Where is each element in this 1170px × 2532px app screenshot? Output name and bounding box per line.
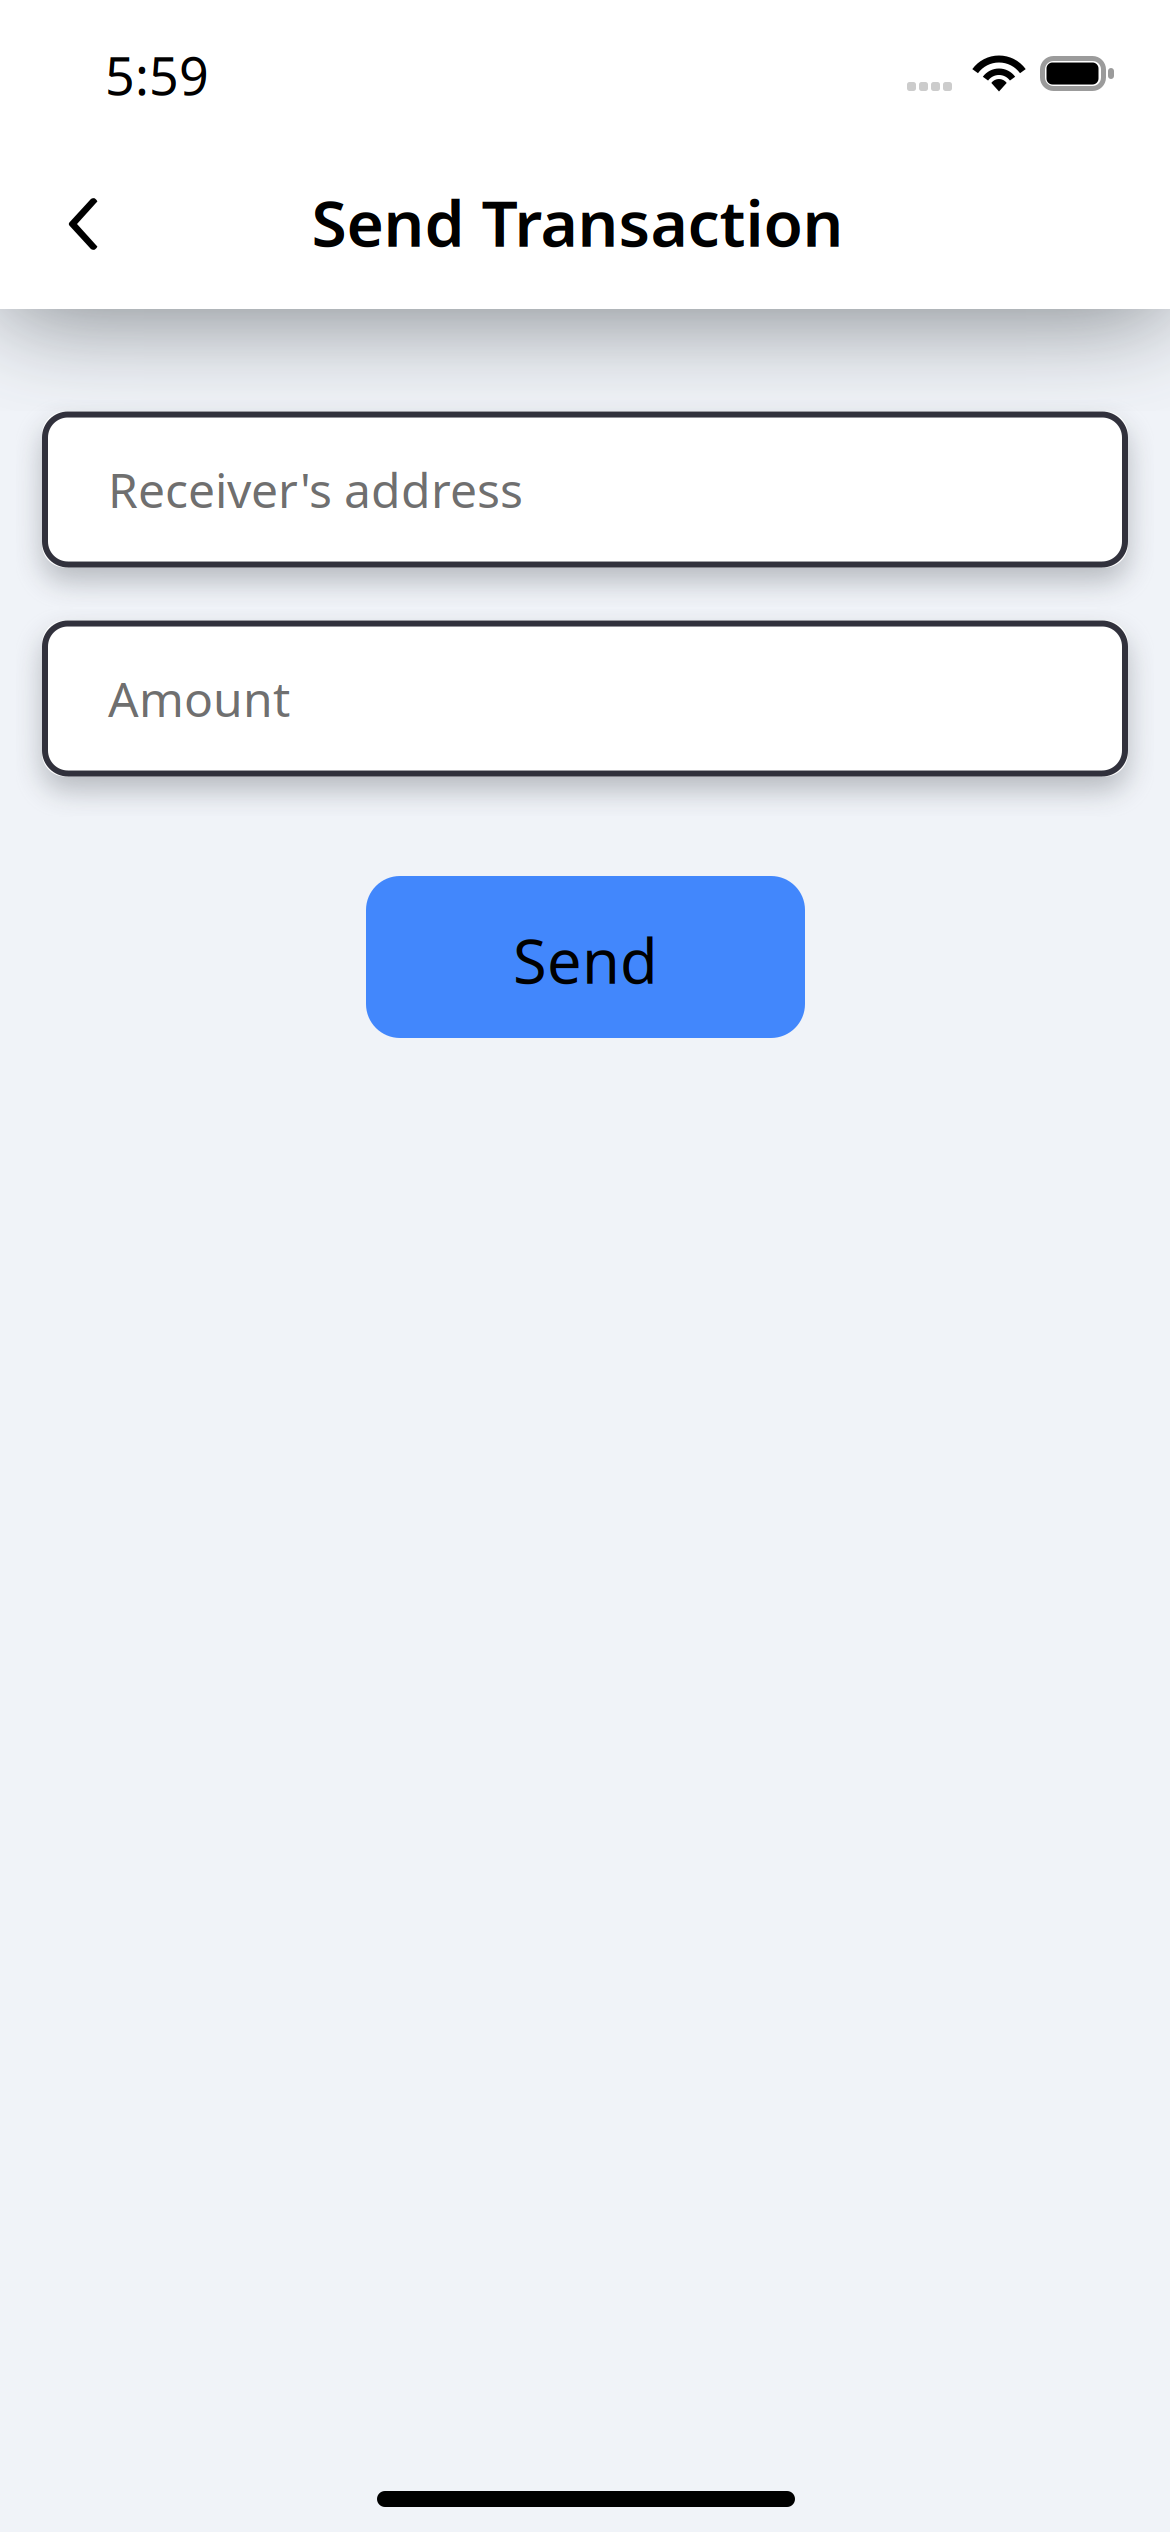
- staticText: Amount: [108, 667, 290, 730]
- staticText: Receiver's address: [108, 458, 523, 521]
- staticText: Send: [513, 919, 658, 1001]
- button[interactable]: Back: [31, 172, 135, 276]
- button[interactable]: Receiver's address: [42, 411, 1128, 567]
- staticText: 5:59: [105, 40, 209, 110]
- staticText: Send Transaction: [311, 179, 843, 264]
- button[interactable]: Amount: [42, 620, 1128, 776]
- button[interactable]: Send: [366, 876, 805, 1038]
